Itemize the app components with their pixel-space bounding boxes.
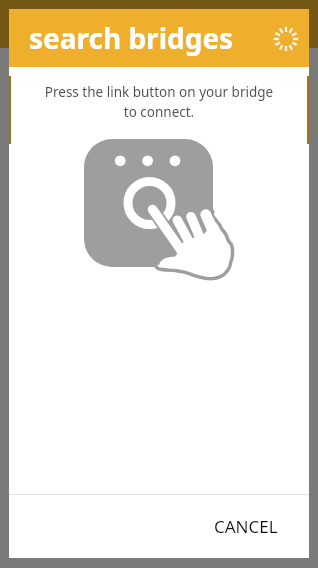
staticText: CANCEL bbox=[214, 515, 278, 538]
staticText: Press the link button on your bridge to … bbox=[37, 83, 281, 121]
button[interactable]: CANCEL bbox=[203, 504, 289, 549]
staticText: search bridges bbox=[29, 19, 234, 57]
other: Searching bbox=[273, 26, 299, 52]
